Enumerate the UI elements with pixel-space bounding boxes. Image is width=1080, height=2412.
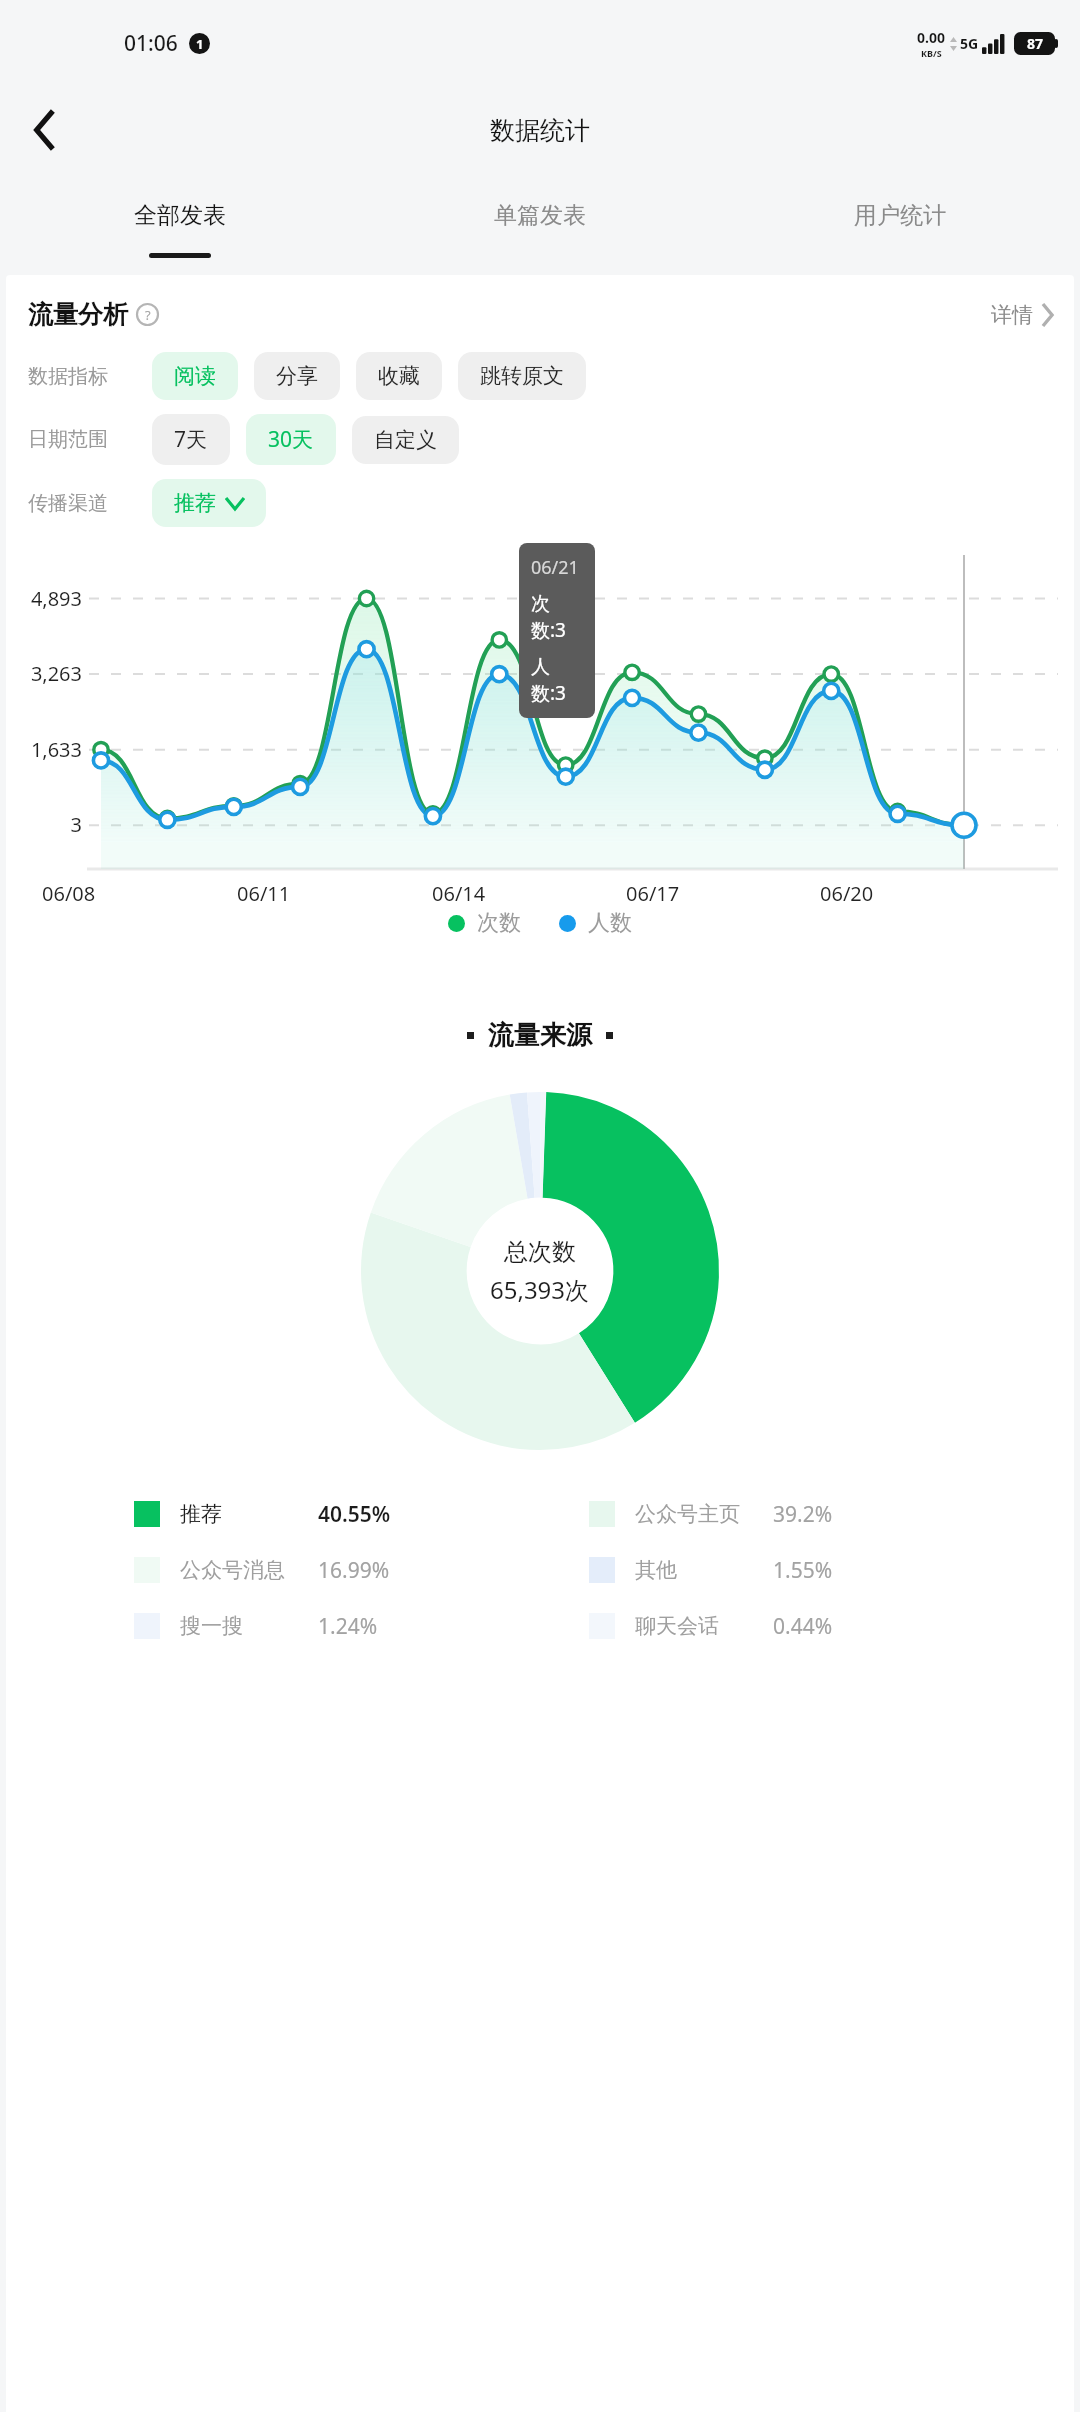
staticText: 5G [960, 34, 979, 53]
button[interactable]: 单篇发表 [360, 174, 720, 266]
staticText: 聊天会话 [635, 1613, 773, 1639]
staticText: 流量来源 [488, 1019, 592, 1052]
button[interactable]: 公众号主页 [589, 1486, 1044, 1542]
staticText: 4,893 [6, 585, 82, 612]
staticText: 推荐 [180, 1501, 318, 1527]
staticText: 30天 [268, 425, 314, 454]
staticText: 06/08 [42, 880, 237, 907]
button[interactable]: 其他 [589, 1542, 1044, 1598]
staticText: 1,633 [6, 736, 82, 763]
staticText: 1.24% [318, 1612, 378, 1641]
button[interactable]: 7天 [152, 414, 230, 465]
button[interactable]: 阅读 [152, 352, 238, 400]
staticText: 流量分析 [28, 299, 128, 330]
button[interactable]: Back [14, 99, 76, 161]
staticText: 3 [6, 811, 82, 838]
staticText: 06/17 [626, 880, 820, 907]
button[interactable]: 收藏 [356, 352, 442, 400]
staticText: ? [145, 306, 151, 324]
button[interactable]: 用户统计 [720, 174, 1080, 266]
staticText: 日期范围 [28, 427, 134, 452]
staticText: 87 [1027, 34, 1044, 53]
staticText: 0.00 [917, 28, 945, 47]
button[interactable]: 分享 [254, 352, 340, 400]
button[interactable]: 搜一搜 [134, 1598, 589, 1654]
staticText: 1 [196, 35, 204, 53]
staticText: 65,393次 [490, 1273, 590, 1306]
staticText: 0.44% [773, 1612, 833, 1641]
staticText: 传播渠道 [28, 491, 134, 516]
staticText: 搜一搜 [180, 1613, 318, 1639]
staticText: 06/11 [237, 880, 432, 907]
staticText: 跳转原文 [480, 363, 564, 389]
staticText: 3,263 [6, 660, 82, 687]
button[interactable]: 自定义 [352, 416, 459, 464]
staticText: 总次数 [504, 1237, 576, 1267]
staticText: 全部发表 [134, 201, 226, 230]
staticText: 次数 [477, 909, 521, 937]
button[interactable]: 聊天会话 [589, 1598, 1044, 1654]
staticText: 01:06 [124, 29, 178, 58]
staticText: 收藏 [378, 363, 420, 389]
button[interactable]: 人数 [559, 909, 632, 937]
button[interactable]: 公众号消息 [134, 1542, 589, 1598]
staticText: 次数:3 [531, 592, 583, 643]
staticText: 数据统计 [490, 115, 590, 146]
staticText: 06/21 [531, 555, 579, 580]
staticText: 7天 [174, 425, 208, 454]
staticText: 16.99% [318, 1556, 390, 1585]
button[interactable]: 详情 [991, 302, 1054, 328]
staticText: 06/20 [820, 880, 1014, 907]
staticText: 公众号主页 [635, 1501, 773, 1527]
staticText: 06/14 [432, 880, 626, 907]
staticText: 人数 [588, 909, 632, 937]
staticText: 自定义 [374, 427, 437, 453]
staticText: 公众号消息 [180, 1557, 318, 1583]
staticText: 推荐 [174, 490, 216, 516]
button[interactable]: 推荐 [152, 479, 266, 527]
staticText: 1.55% [773, 1556, 833, 1585]
staticText: 单篇发表 [494, 201, 586, 230]
button[interactable]: 次数 [448, 909, 521, 937]
button[interactable]: Help [136, 303, 159, 326]
button[interactable]: 跳转原文 [458, 352, 586, 400]
staticText: 阅读 [174, 363, 216, 389]
staticText: 数据指标 [28, 364, 134, 389]
button[interactable]: 全部发表 [0, 174, 360, 266]
staticText: 人数:3 [531, 655, 583, 706]
staticText: 用户统计 [854, 201, 946, 230]
staticText: 分享 [276, 363, 318, 389]
staticText: 39.2% [773, 1500, 833, 1529]
button[interactable]: 推荐 [134, 1486, 589, 1542]
staticText: 40.55% [318, 1500, 391, 1529]
staticText: 其他 [635, 1557, 773, 1583]
staticText: 详情 [991, 302, 1033, 328]
button[interactable]: 30天 [246, 414, 336, 465]
staticText: KB/S [921, 47, 942, 59]
